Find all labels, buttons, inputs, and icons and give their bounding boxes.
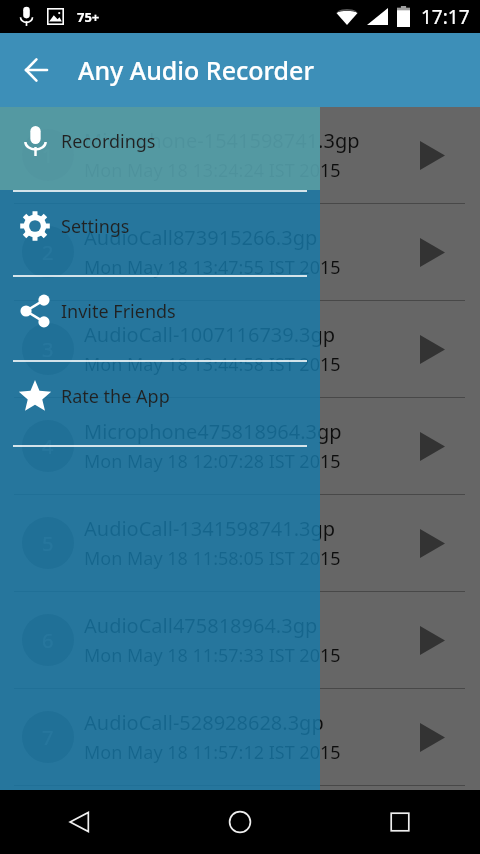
- button[interactable]: Play: [384, 689, 480, 785]
- staticText: Invite Friends: [61, 299, 176, 324]
- button[interactable]: Play: [384, 398, 480, 494]
- staticText: AudioCall-1007116739.3gp: [84, 321, 336, 348]
- staticText: Mon May 18 11:58:05 IST 2015: [84, 546, 341, 571]
- staticText: Recordings: [61, 129, 156, 154]
- staticText: 3: [42, 336, 54, 363]
- button[interactable]: Play: [384, 301, 480, 397]
- button[interactable]: Play: [384, 107, 480, 203]
- staticText: Microphone-1541598741.3gp: [84, 127, 320, 154]
- staticText: Mon May 18 11:57:12 IST 2015: [84, 740, 320, 765]
- staticText: AudioCall-1341598741.3gp: [84, 515, 320, 542]
- staticText: AudioCall475818964.3gp: [84, 612, 318, 639]
- staticText: AudioCall-1007116739.3gp: [84, 321, 320, 348]
- button[interactable]: Recents: [320, 790, 480, 854]
- button[interactable]: Play: [384, 592, 480, 688]
- button[interactable]: Invite Friends: [0, 277, 320, 362]
- button[interactable]: 6: [0, 592, 480, 689]
- staticText: AudioCall-528928628.3gp: [84, 709, 324, 736]
- button[interactable]: 1: [0, 107, 320, 204]
- staticText: Mon May 18 11:57:33 IST 2015: [84, 643, 341, 668]
- button[interactable]: 3: [0, 301, 480, 398]
- button[interactable]: Settings: [0, 192, 320, 277]
- staticText: Any Audio Recorder: [78, 53, 315, 87]
- button[interactable]: 4: [0, 398, 480, 495]
- staticText: Mon May 18 13:44:58 IST 2015: [84, 352, 320, 377]
- staticText: 1: [42, 142, 54, 169]
- button[interactable]: Play: [384, 495, 480, 591]
- staticText: AudioCall873915266.3gp: [84, 224, 318, 251]
- staticText: Mon May 18 11:57:12 IST 2015: [84, 740, 341, 765]
- staticText: Microphone475818964.3gp: [84, 418, 342, 445]
- button[interactable]: 5: [0, 495, 480, 592]
- staticText: Rate the App: [61, 384, 170, 409]
- staticText: AudioCall475818964.3gp: [84, 612, 318, 639]
- button[interactable]: Back: [0, 33, 72, 107]
- button[interactable]: Home: [160, 790, 320, 854]
- staticText: 75+: [77, 8, 100, 26]
- staticText: Mon May 18 12:07:28 IST 2015: [84, 449, 320, 474]
- staticText: AudioCall-1341598741.3gp: [84, 515, 336, 542]
- button[interactable]: 1: [0, 107, 480, 204]
- button[interactable]: Rate the App: [0, 362, 320, 447]
- button[interactable]: 4: [0, 398, 320, 495]
- staticText: AudioCall-528928628.3gp: [84, 709, 320, 736]
- staticText: Mon May 18 12:07:28 IST 2015: [84, 449, 341, 474]
- button[interactable]: 6: [0, 592, 320, 689]
- staticText: 1: [42, 142, 54, 169]
- button[interactable]: 2: [0, 204, 320, 301]
- staticText: 4: [42, 433, 54, 460]
- button[interactable]: Recordings: [0, 107, 320, 192]
- staticText: Mon May 18 13:47:55 IST 2015: [84, 255, 341, 280]
- button[interactable]: 3: [0, 301, 320, 398]
- button[interactable]: Play: [384, 204, 480, 300]
- staticText: 4: [42, 433, 54, 460]
- staticText: 17:17: [421, 4, 470, 30]
- button[interactable]: 7: [0, 689, 480, 786]
- staticText: Mon May 18 13:47:55 IST 2015: [84, 255, 320, 280]
- button[interactable]: 5: [0, 495, 320, 592]
- staticText: Settings: [61, 214, 130, 239]
- staticText: Mon May 18 13:24:24 IST 2015: [84, 158, 341, 183]
- button[interactable]: 2: [0, 204, 480, 301]
- staticText: 3: [42, 336, 54, 363]
- staticText: Mon May 18 11:58:05 IST 2015: [84, 546, 320, 571]
- staticText: Mon May 18 13:44:58 IST 2015: [84, 352, 341, 377]
- button[interactable]: Back: [0, 790, 160, 854]
- staticText: Microphone-1541598741.3gp: [84, 127, 360, 154]
- staticText: Mon May 18 11:57:33 IST 2015: [84, 643, 320, 668]
- staticText: Microphone475818964.3gp: [84, 418, 320, 445]
- staticText: AudioCall873915266.3gp: [84, 224, 318, 251]
- button[interactable]: 7: [0, 689, 320, 786]
